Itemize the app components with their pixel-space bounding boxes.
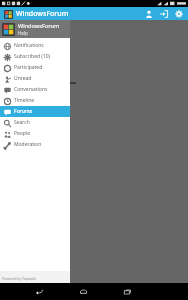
staticText: Unread (14, 75, 32, 82)
staticText: Help (18, 30, 28, 36)
button[interactable]: Settings (171, 7, 186, 20)
button[interactable]: Open navigation drawer (3, 9, 13, 19)
staticText: Forums (14, 108, 33, 115)
staticText: Conversations (14, 86, 48, 93)
staticText: Powered by Tapatalk (2, 276, 36, 281)
button[interactable]: Subscribed (10) (0, 51, 70, 62)
button[interactable]: Timeline (0, 95, 70, 106)
staticText: People (14, 130, 31, 137)
staticText: Timeline (14, 97, 35, 104)
staticText: Notifications (14, 42, 44, 49)
button[interactable]: Conversations (0, 84, 70, 95)
staticText: Subscribed (10) (14, 53, 51, 60)
button[interactable]: WindowsForum (0, 20, 70, 38)
button[interactable]: Log in (156, 7, 171, 20)
button[interactable]: Back (29, 283, 49, 300)
staticText: Search (14, 119, 30, 126)
button[interactable]: Powered by Tapatalk (0, 271, 70, 283)
button[interactable]: Notifications (0, 40, 70, 51)
button[interactable]: Participated (0, 62, 70, 73)
button[interactable]: People (0, 128, 70, 139)
button[interactable]: Unread (0, 73, 70, 84)
button[interactable]: Home (73, 283, 93, 300)
button[interactable]: Search (0, 117, 70, 128)
button[interactable]: Account (141, 7, 156, 20)
staticText: Participated (14, 64, 43, 71)
staticText: WindowsForum (18, 22, 60, 29)
staticText: WindowsForum (16, 9, 141, 19)
button[interactable]: Moderation (0, 139, 70, 150)
button[interactable]: Recents (117, 283, 137, 300)
button[interactable]: Forums (0, 106, 70, 117)
staticText: Moderation (14, 141, 42, 148)
